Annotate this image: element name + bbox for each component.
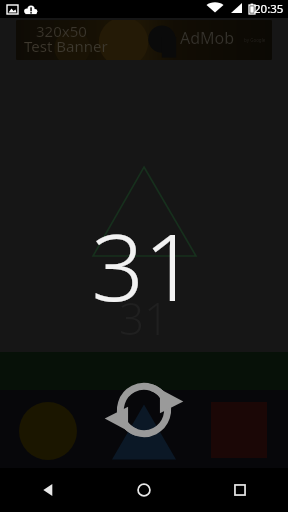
button[interactable]: 320x50 [16,20,272,60]
staticText: 31 [0,203,288,328]
staticText: 20:35 [254,1,284,17]
button[interactable]: Back [0,468,96,512]
staticText: 31 [0,288,288,348]
button[interactable]: Colour swatch yellow [19,402,77,460]
button[interactable]: Home [96,468,192,512]
button[interactable]: Recent apps [192,468,288,512]
staticText: Test Banner [24,36,108,56]
staticText: 320x50 [36,21,87,41]
staticText: by Google [244,37,266,43]
button[interactable]: Refresh [104,378,184,458]
staticText: AdMob [180,27,235,49]
